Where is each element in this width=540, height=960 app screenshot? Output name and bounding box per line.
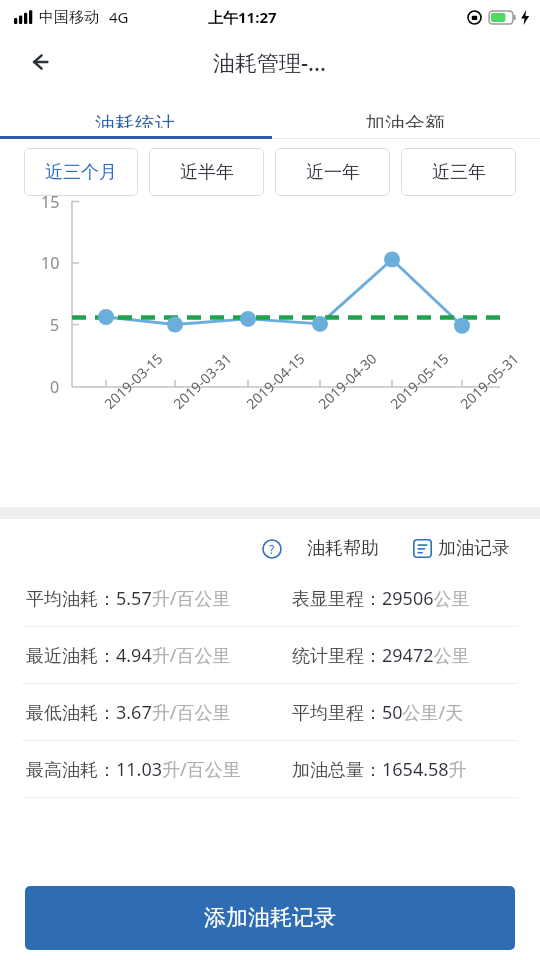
button[interactable]: 加油金额 [270,90,540,139]
button[interactable]: 近半年 [149,148,264,196]
staticText: 近三年 [432,161,486,184]
staticText: 上午11:27 [208,7,277,27]
staticText: 最低油耗：3.67升/百公里 [26,700,231,725]
button[interactable]: 近三个月 [24,148,138,196]
button[interactable]: 油耗统计 [0,90,270,139]
button[interactable]: 加油记录 [409,533,514,564]
staticText: 平均油耗：5.57升/百公里 [26,586,231,611]
staticText: 近一年 [306,161,360,184]
staticText: 统计里程：29472公里 [292,643,470,668]
button[interactable]: Back [18,41,60,83]
button[interactable]: ? [258,533,383,564]
staticText: 平均里程：50公里/天 [292,700,464,725]
staticText: 添加油耗记录 [204,904,336,932]
staticText: 近半年 [180,161,234,184]
staticText: 加油总量：1654.58升 [292,757,467,782]
staticText: 最近油耗：4.94升/百公里 [26,643,231,668]
staticText: ? [269,541,275,557]
button[interactable]: 添加油耗记录 [25,886,515,950]
staticText: 近三个月 [45,161,117,184]
staticText: 表显里程：29506公里 [292,586,470,611]
staticText: 4G [109,7,129,27]
staticText: 加油记录 [438,537,510,560]
button[interactable]: 近一年 [275,148,390,196]
staticText: 油耗统计 [95,112,175,128]
staticText: 油耗帮助 [307,537,379,560]
button[interactable]: 近三年 [401,148,516,196]
staticText: 中国移动 [39,8,99,27]
staticText: 加油金额 [365,112,445,128]
staticText: 最高油耗：11.03升/百公里 [26,757,241,782]
staticText: 油耗管理-... [213,47,327,77]
